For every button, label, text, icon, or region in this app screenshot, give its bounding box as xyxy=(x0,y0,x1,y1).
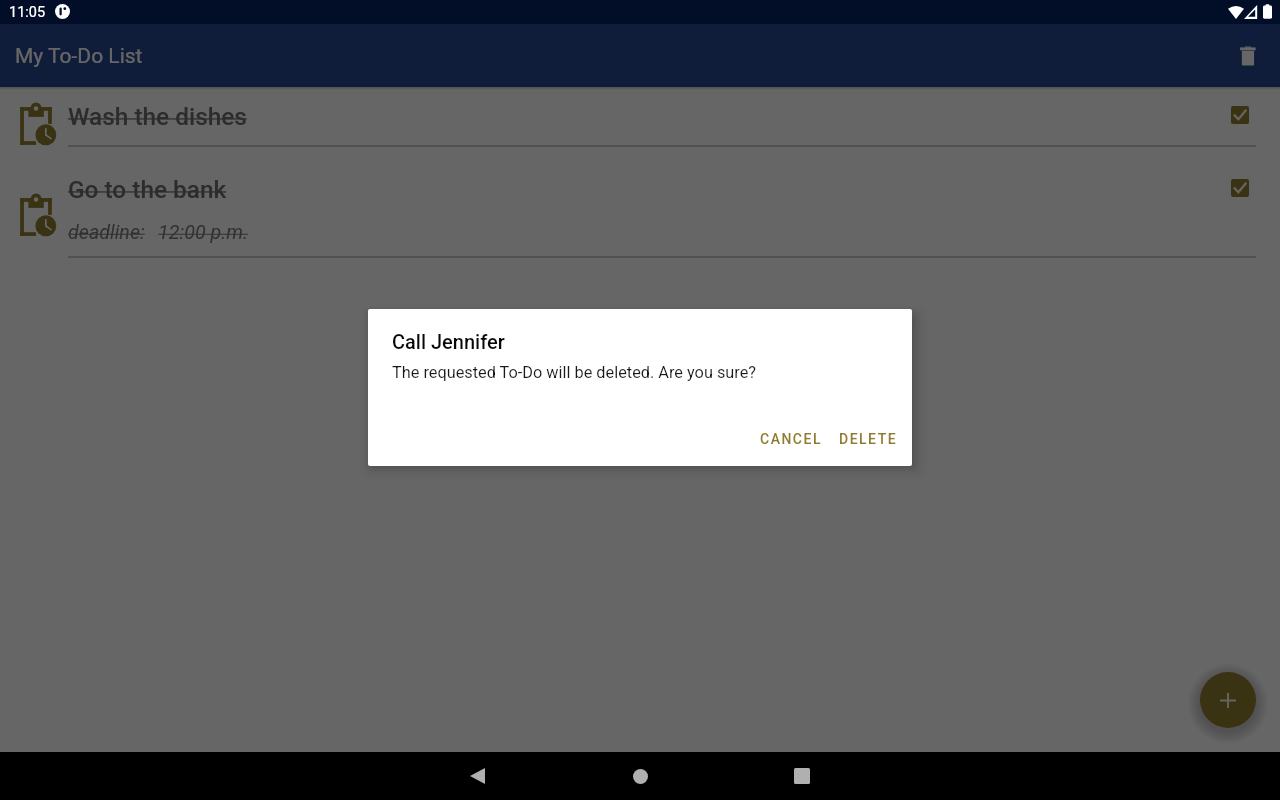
staticText: Go to the bank xyxy=(68,175,227,204)
button[interactable]: Home xyxy=(616,752,664,800)
staticText: deadline: xyxy=(68,221,145,244)
button[interactable]: CANCEL xyxy=(753,423,829,455)
staticText: The requested To-Do will be deleted. Are… xyxy=(392,363,757,382)
button[interactable]: Wash the dishes xyxy=(0,87,1280,147)
staticText: DELETE xyxy=(839,431,898,447)
button[interactable]: Mark "Wash the dishes" as not done xyxy=(1231,106,1249,124)
button[interactable]: Add new to-do xyxy=(1200,672,1256,728)
button[interactable]: Recent apps xyxy=(778,752,826,800)
staticText: CANCEL xyxy=(760,431,822,447)
button[interactable]: DELETE xyxy=(832,423,905,455)
button[interactable]: Delete all to-dos xyxy=(1228,36,1268,76)
button[interactable]: Mark "Go to the bank" as not done xyxy=(1231,179,1249,197)
staticText: 12:00 p.m. xyxy=(158,221,249,244)
staticText: Wash the dishes xyxy=(68,102,247,131)
button[interactable]: Go to the bank xyxy=(0,147,1280,258)
staticText: 11:05 xyxy=(9,4,46,21)
staticText: Call Jennifer xyxy=(392,330,505,353)
staticText: My To-Do List xyxy=(15,44,143,69)
button[interactable]: Back xyxy=(453,752,501,800)
